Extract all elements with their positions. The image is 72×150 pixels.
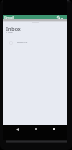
staticText: Inbox (6, 25, 21, 32)
button[interactable]: Home (33, 126, 39, 132)
staticText: Read/Un (17, 40, 28, 43)
button[interactable]: Recent apps (51, 126, 57, 132)
button[interactable]: Search (57, 16, 60, 19)
staticText: Gmail (4, 15, 15, 19)
button[interactable]: Gmail (4, 15, 15, 19)
button[interactable]: Back (14, 126, 20, 132)
button[interactable]: Read/Un (3, 39, 67, 46)
staticText: 1 new (6, 30, 13, 33)
button[interactable]: Account (60, 17, 63, 20)
